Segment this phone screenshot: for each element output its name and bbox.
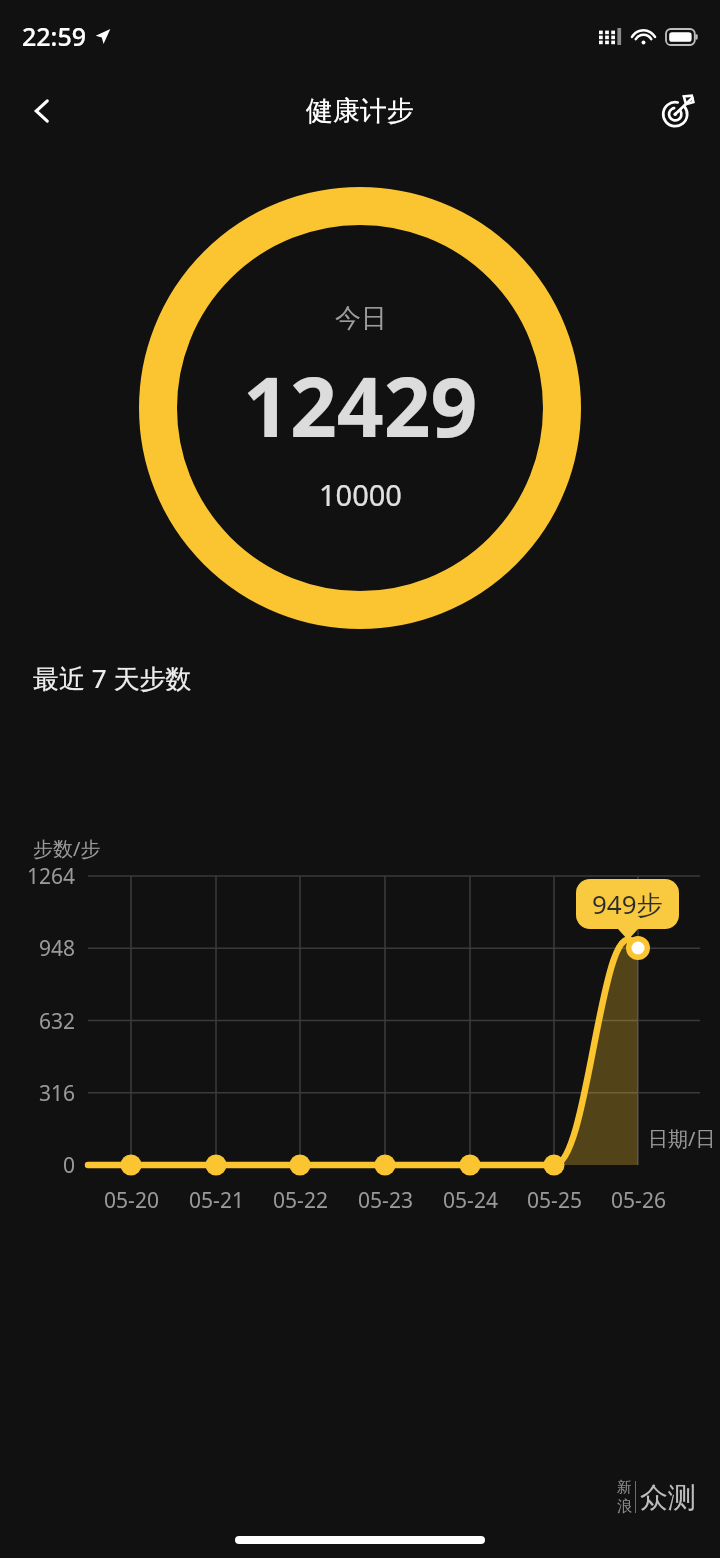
staticText: 05-22 bbox=[273, 1186, 328, 1215]
staticText: 今日 bbox=[335, 302, 387, 335]
staticText: 1264 bbox=[26, 862, 75, 891]
staticText: 健康计步 bbox=[306, 94, 414, 128]
staticText: 949步 bbox=[592, 886, 663, 922]
button[interactable]: 949步 bbox=[576, 879, 679, 940]
staticText: 浪 bbox=[617, 1497, 632, 1516]
staticText: 日期/日 bbox=[648, 1125, 716, 1152]
button[interactable]: Back bbox=[14, 83, 70, 139]
staticText: 10000 bbox=[319, 475, 402, 514]
staticText: 12429 bbox=[243, 349, 478, 461]
button[interactable]: Set goal bbox=[650, 83, 706, 139]
staticText: 新 bbox=[617, 1478, 632, 1497]
staticText: 05-20 bbox=[104, 1186, 159, 1215]
staticText: 步数/步 bbox=[33, 835, 101, 862]
staticText: 948 bbox=[38, 934, 75, 963]
staticText: 众测 bbox=[640, 1480, 696, 1515]
staticText: 0 bbox=[62, 1151, 75, 1180]
staticText: 05-24 bbox=[443, 1186, 498, 1215]
staticText: 05-26 bbox=[611, 1186, 666, 1215]
staticText: 632 bbox=[38, 1007, 75, 1036]
staticText: 最近 7 天步数 bbox=[33, 660, 192, 696]
staticText: 05-23 bbox=[358, 1186, 413, 1215]
staticText: 05-21 bbox=[189, 1186, 244, 1215]
staticText: 05-25 bbox=[527, 1186, 582, 1215]
staticText: 316 bbox=[38, 1079, 75, 1108]
staticText: 22:59 bbox=[22, 19, 87, 53]
